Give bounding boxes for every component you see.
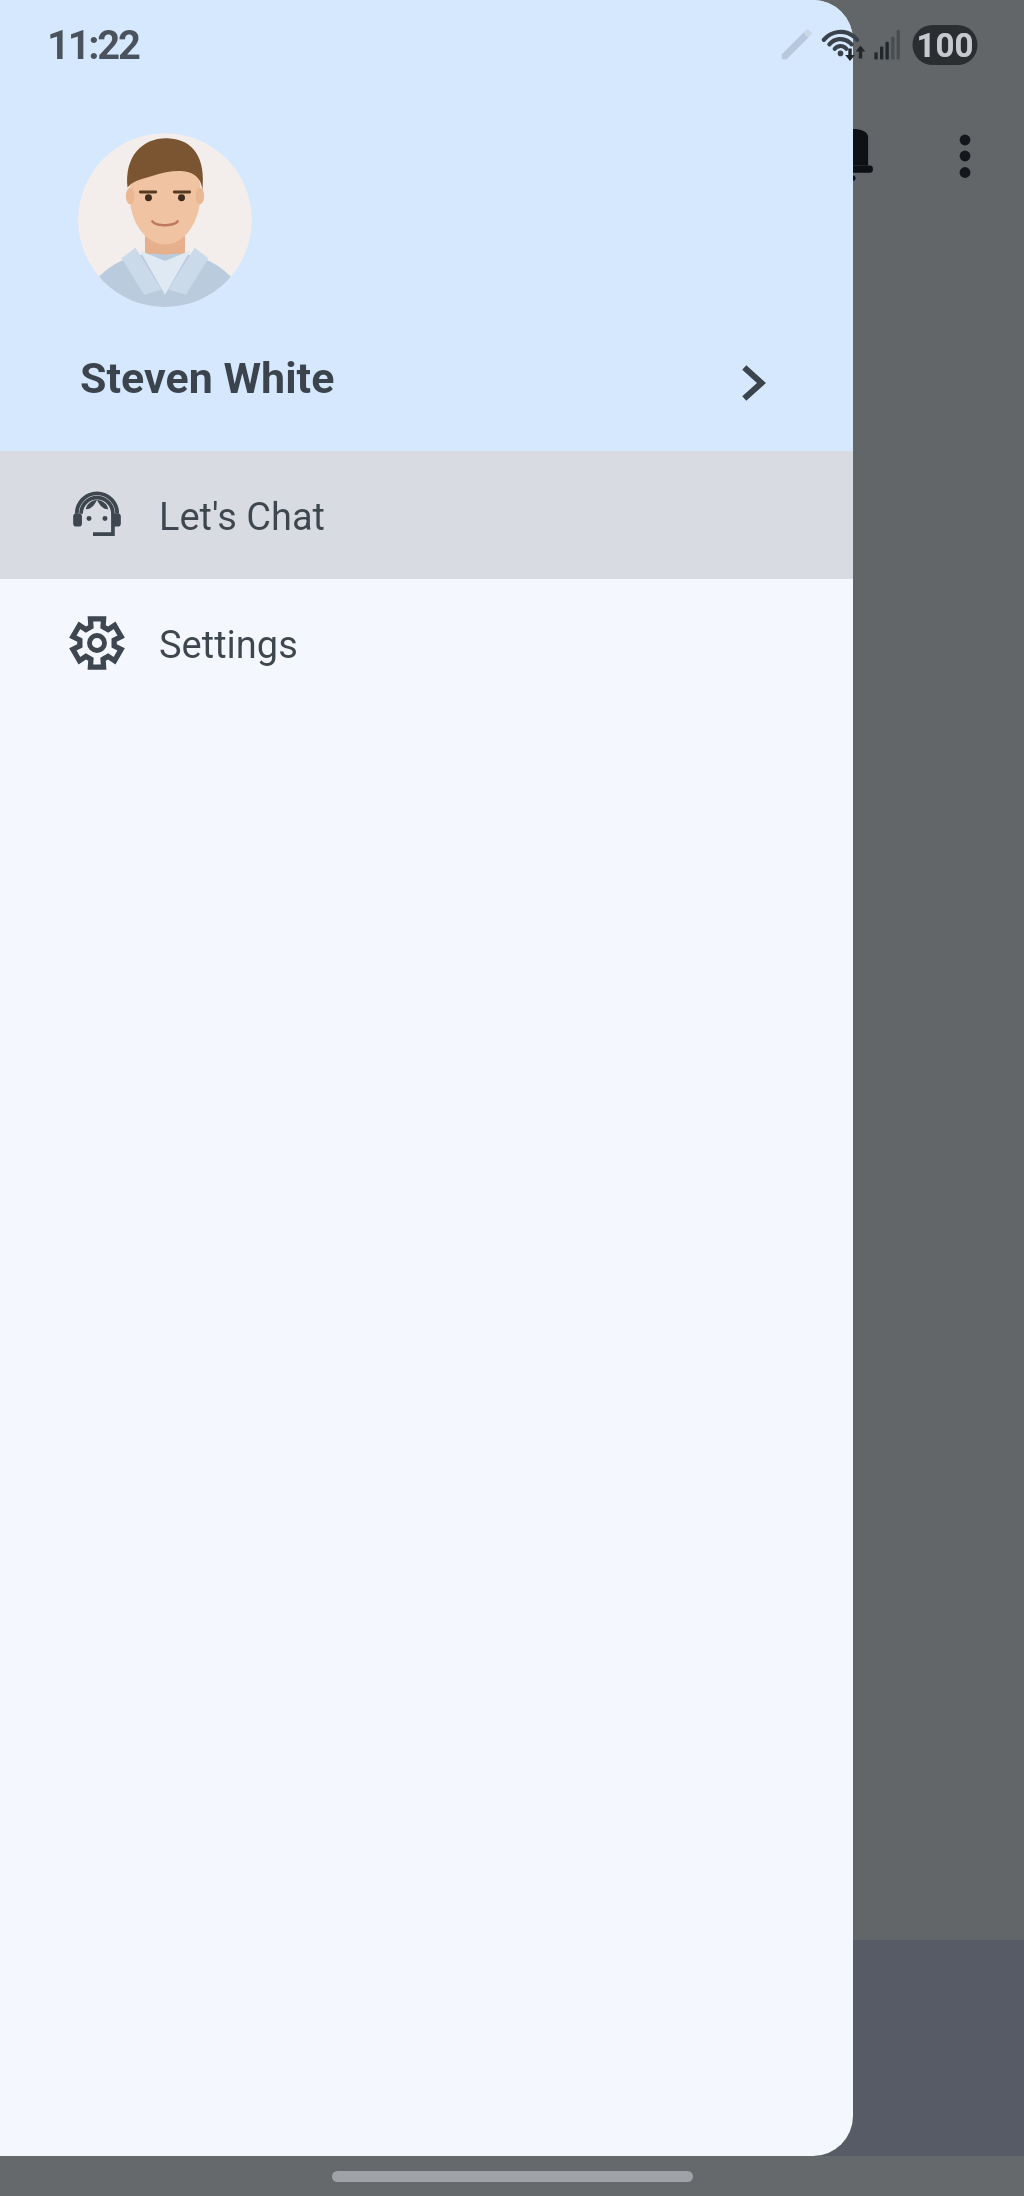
staticText: 11:22 (47, 22, 139, 69)
staticText: Steven White (80, 353, 335, 403)
staticText: 100 (912, 26, 978, 65)
staticText: Settings (159, 623, 298, 668)
button[interactable]: Close navigation drawer (0, 0, 1024, 2196)
button[interactable]: Steven White (0, 326, 853, 430)
staticText: Let's Chat (159, 495, 326, 540)
button[interactable]: Profile photo (78, 133, 252, 307)
button[interactable]: More options (933, 124, 997, 188)
button[interactable]: Notifications (825, 125, 881, 181)
button[interactable]: Let's Chat (0, 451, 853, 579)
button[interactable]: Settings (0, 579, 853, 707)
